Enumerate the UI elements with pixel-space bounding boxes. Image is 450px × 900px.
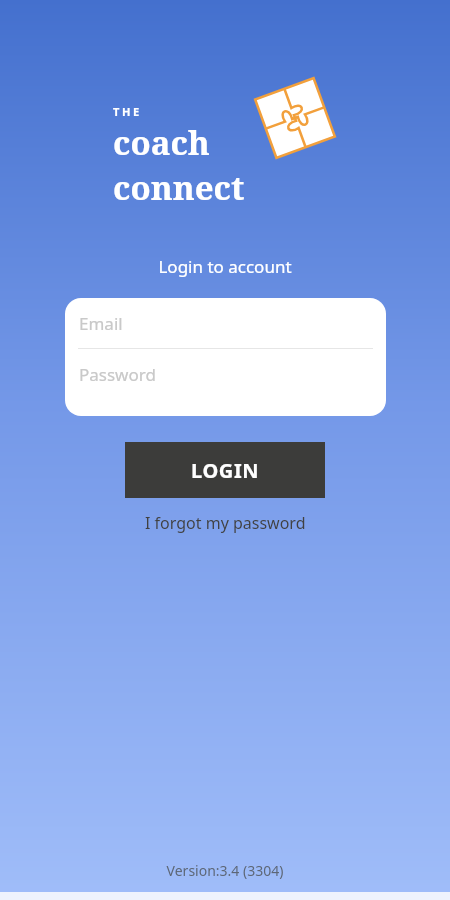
staticText: connect bbox=[113, 165, 245, 210]
staticText: Email bbox=[79, 312, 123, 335]
staticText: LOGIN bbox=[191, 457, 260, 484]
staticText: Login to account bbox=[0, 255, 450, 278]
button[interactable]: Email bbox=[65, 298, 386, 348]
button[interactable]: LOGIN bbox=[125, 442, 325, 498]
button[interactable]: Password bbox=[65, 349, 386, 399]
staticText: Version:3.4 (3304) bbox=[0, 861, 450, 880]
staticText: Password bbox=[79, 363, 156, 386]
staticText: THE bbox=[113, 104, 142, 119]
button[interactable]: I forgot my password bbox=[139, 510, 312, 536]
staticText: coach bbox=[113, 120, 210, 165]
staticText: I forgot my password bbox=[145, 512, 306, 534]
